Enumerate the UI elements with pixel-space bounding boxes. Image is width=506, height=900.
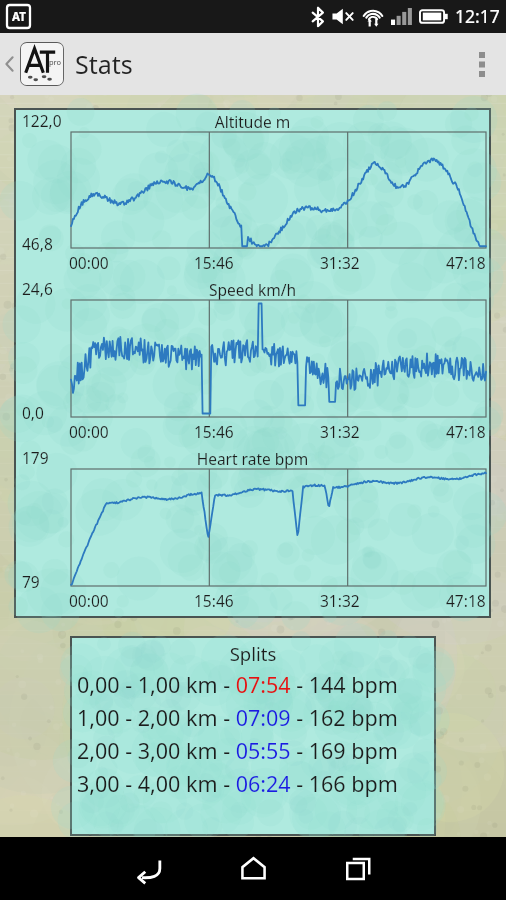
button[interactable]: Splits (72, 638, 434, 834)
staticText: 122,0 (22, 110, 62, 131)
button[interactable]: Back (96, 837, 201, 900)
staticText: pro (49, 57, 62, 67)
staticText: 00:00 (69, 252, 109, 273)
other: Navigate up (3, 51, 16, 77)
staticText: 179 (22, 447, 49, 468)
staticText: 2,00 - 3,00 km - 05:55 - 169 bpm (77, 736, 398, 765)
button[interactable]: More options (458, 33, 506, 95)
staticText: Altitude m (16, 111, 489, 132)
staticText: Splits (72, 641, 434, 666)
staticText: 47:18 (446, 590, 486, 611)
staticText: 47:18 (446, 252, 486, 273)
staticText: 1,00 - 2,00 km - 07:09 - 162 bpm (77, 703, 398, 732)
staticText: 15:46 (194, 252, 234, 273)
staticText: 47:18 (446, 421, 486, 442)
staticText: Speed km/h (16, 279, 489, 300)
staticText: 00:00 (69, 590, 109, 611)
button[interactable]: Home (201, 837, 306, 900)
button[interactable]: Recent apps (306, 837, 411, 900)
staticText: 79 (22, 571, 40, 592)
button[interactable]: 122,0 (16, 110, 489, 616)
staticText: 00:00 (69, 421, 109, 442)
staticText: 0,00 - 1,00 km - 07:54 - 144 bpm (77, 670, 398, 699)
staticText: AT (12, 9, 26, 25)
staticText: Heart rate bpm (16, 448, 489, 469)
staticText: 46,8 (22, 233, 53, 254)
staticText: 0,0 (22, 402, 44, 423)
staticText: 12:17 (455, 4, 500, 28)
button[interactable]: Navigate up (0, 37, 141, 91)
staticText: Stats (75, 47, 133, 81)
staticText: 15:46 (194, 590, 234, 611)
staticText: 15:46 (194, 421, 234, 442)
staticText: 31:32 (320, 590, 360, 611)
staticText: 31:32 (320, 252, 360, 273)
staticText: 24,6 (22, 278, 53, 299)
staticText: 31:32 (320, 421, 360, 442)
staticText: 3,00 - 4,00 km - 06:24 - 166 bpm (77, 769, 398, 798)
